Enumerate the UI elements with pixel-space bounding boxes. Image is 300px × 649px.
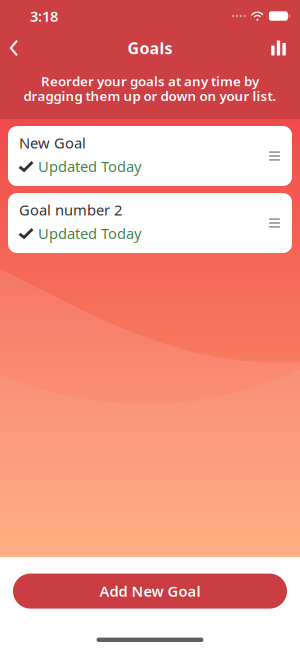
button[interactable]: Back (0, 33, 31, 63)
staticText: Add New Goal (99, 581, 200, 601)
staticText: Reorder your goals at any time by (41, 72, 259, 90)
button[interactable]: New Goal (0, 126, 300, 186)
staticText: Goals (127, 37, 172, 59)
button[interactable]: Goal number 2 (0, 193, 300, 253)
staticText: Updated Today (38, 223, 141, 243)
staticText: Updated Today (38, 156, 141, 176)
staticText: New Goal (19, 133, 86, 152)
staticText: 3:18 (30, 6, 58, 26)
staticText: Goal number 2 (19, 200, 122, 219)
button[interactable]: Statistics (260, 33, 300, 62)
staticText: dragging them up or down on your list. (23, 87, 276, 105)
button[interactable]: Add New Goal (0, 574, 300, 609)
